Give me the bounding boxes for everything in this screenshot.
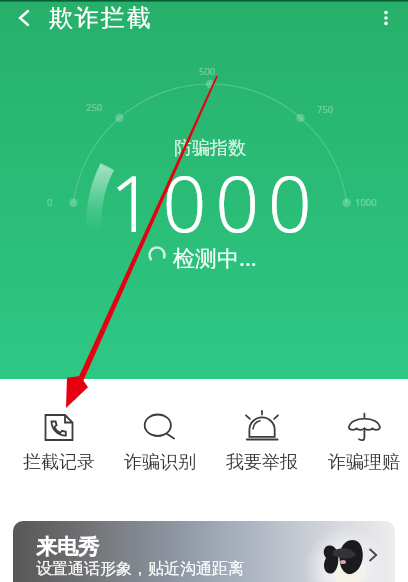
button[interactable]: 诈骗识别 bbox=[109, 404, 210, 476]
staticText: 拦截记录 bbox=[23, 451, 95, 474]
staticText: 500 bbox=[199, 65, 216, 78]
staticText: 设置通话形象，贴近沟通距离 bbox=[36, 559, 244, 579]
staticText: 诈骗识别 bbox=[124, 451, 196, 474]
button[interactable]: Back bbox=[6, 0, 42, 36]
staticText: 诈骗理赔 bbox=[328, 451, 400, 474]
button[interactable]: 我要举报 bbox=[211, 404, 312, 476]
staticText: 检测中... bbox=[173, 242, 257, 272]
staticText: 来电秀 bbox=[36, 534, 99, 560]
button[interactable]: 诈骗理赔 bbox=[313, 404, 408, 476]
staticText: 750 bbox=[317, 103, 334, 116]
staticText: 0 bbox=[47, 196, 53, 209]
staticText: 1000 bbox=[355, 196, 377, 209]
staticText: 欺诈拦截 bbox=[49, 3, 153, 33]
staticText: 250 bbox=[86, 101, 103, 114]
button[interactable]: 来电秀 bbox=[13, 521, 395, 582]
staticText: 1000 bbox=[110, 150, 321, 255]
button[interactable]: 拦截记录 bbox=[8, 404, 109, 476]
staticText: 防骗指数 bbox=[174, 137, 246, 160]
button[interactable]: More options bbox=[368, 0, 404, 36]
staticText: 我要举报 bbox=[226, 451, 298, 474]
